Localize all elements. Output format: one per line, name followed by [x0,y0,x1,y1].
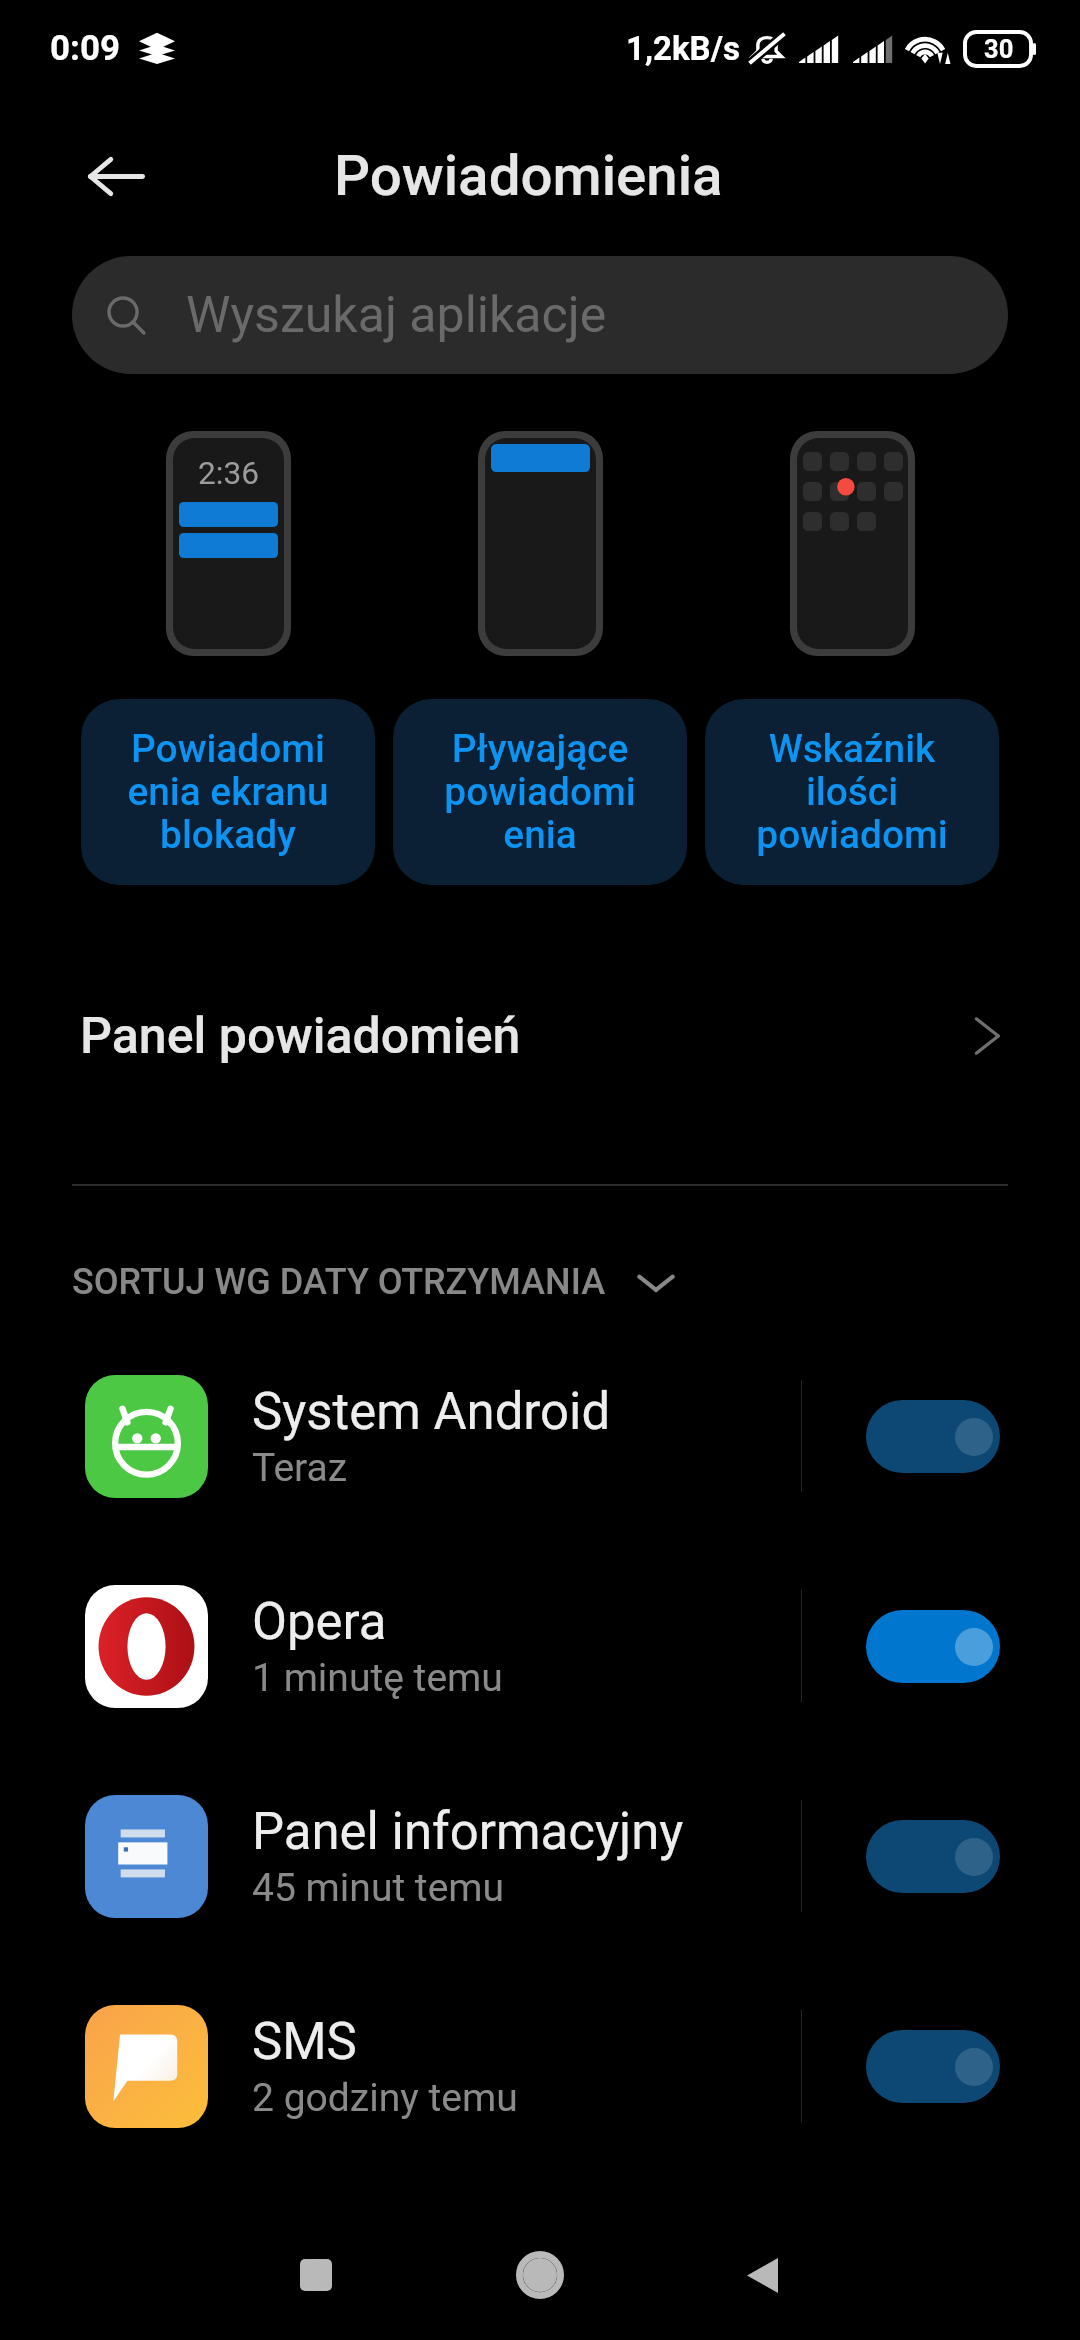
staticText: Opera [252,1592,387,1652]
button[interactable]: Toggle System Android [866,1400,1000,1473]
button[interactable]: Toggle Panel informacyjny [866,1820,1000,1893]
button[interactable]: Back [56,116,177,237]
button[interactable]: Toggle SMS [866,2030,1000,2103]
staticText: 1 minutę temu [252,1655,503,1701]
button[interactable]: Recent apps [261,2220,371,2330]
staticText: SORTUJ WG DATY OTRZYMANIA [72,1261,606,1303]
button[interactable]: SMS [0,1961,1080,2171]
staticText: Pływające powiadomi enia [444,726,636,858]
button[interactable]: Panel informacyjny [0,1751,1080,1961]
button[interactable]: Toggle Opera [866,1610,1000,1683]
staticText: Wyszukaj aplikacje [186,286,607,345]
staticText: SMS [252,2012,357,2072]
staticText: 2:36 [198,455,259,492]
staticText: Panel powiadomień [80,1007,521,1066]
staticText: 45 minut temu [252,1865,505,1911]
button[interactable]: Home [485,2220,595,2330]
staticText: 2 godziny temu [252,2075,518,2121]
button[interactable]: Back [707,2220,817,2330]
button[interactable]: Panel powiadomień [0,981,1080,1091]
staticText: 0:09 [50,28,120,69]
button[interactable]: Powiadomi enia ekranu blokady [81,699,375,885]
button[interactable]: Opera [0,1541,1080,1751]
staticText: 30 [984,34,1014,64]
button[interactable]: Pływające powiadomi enia [393,699,687,885]
staticText: Teraz [252,1445,348,1491]
staticText: 1,2kB/s [626,29,740,68]
staticText: Panel informacyjny [252,1802,684,1862]
button[interactable]: Wskaźnik ilości powiadomi [705,699,999,885]
staticText: Powiadomienia [334,143,723,209]
button[interactable]: System Android [0,1331,1080,1541]
button[interactable]: SORTUJ WG DATY OTRZYMANIA [72,1260,678,1304]
button[interactable]: Wyszukaj aplikacje [72,256,1008,374]
staticText: System Android [252,1382,611,1442]
staticText: Powiadomi enia ekranu blokady [127,726,329,858]
staticText: Wskaźnik ilości powiadomi [756,726,948,858]
